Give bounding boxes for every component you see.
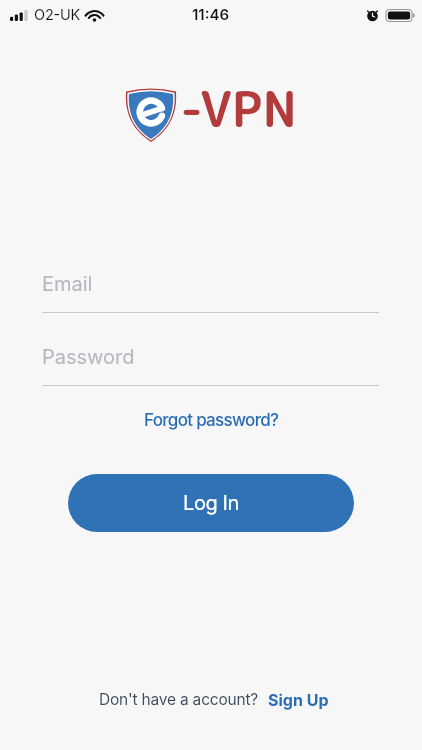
staticText: Don't have a account?	[99, 690, 259, 709]
staticText: Forgot password?	[144, 410, 279, 431]
staticText: Sign Up	[268, 690, 329, 709]
staticText: Log In	[183, 491, 239, 515]
button[interactable]: Forgot password?	[140, 406, 283, 435]
button[interactable]: Password	[42, 345, 379, 386]
staticText: 11:46	[192, 5, 230, 23]
staticText: O2-UK	[34, 6, 81, 24]
staticText: -VPN	[180, 75, 298, 142]
staticText: Email	[42, 272, 93, 296]
button[interactable]: Log In	[68, 474, 354, 532]
button[interactable]: Sign Up	[268, 690, 329, 709]
button[interactable]: Email	[42, 272, 379, 313]
staticText: Password	[42, 345, 135, 369]
